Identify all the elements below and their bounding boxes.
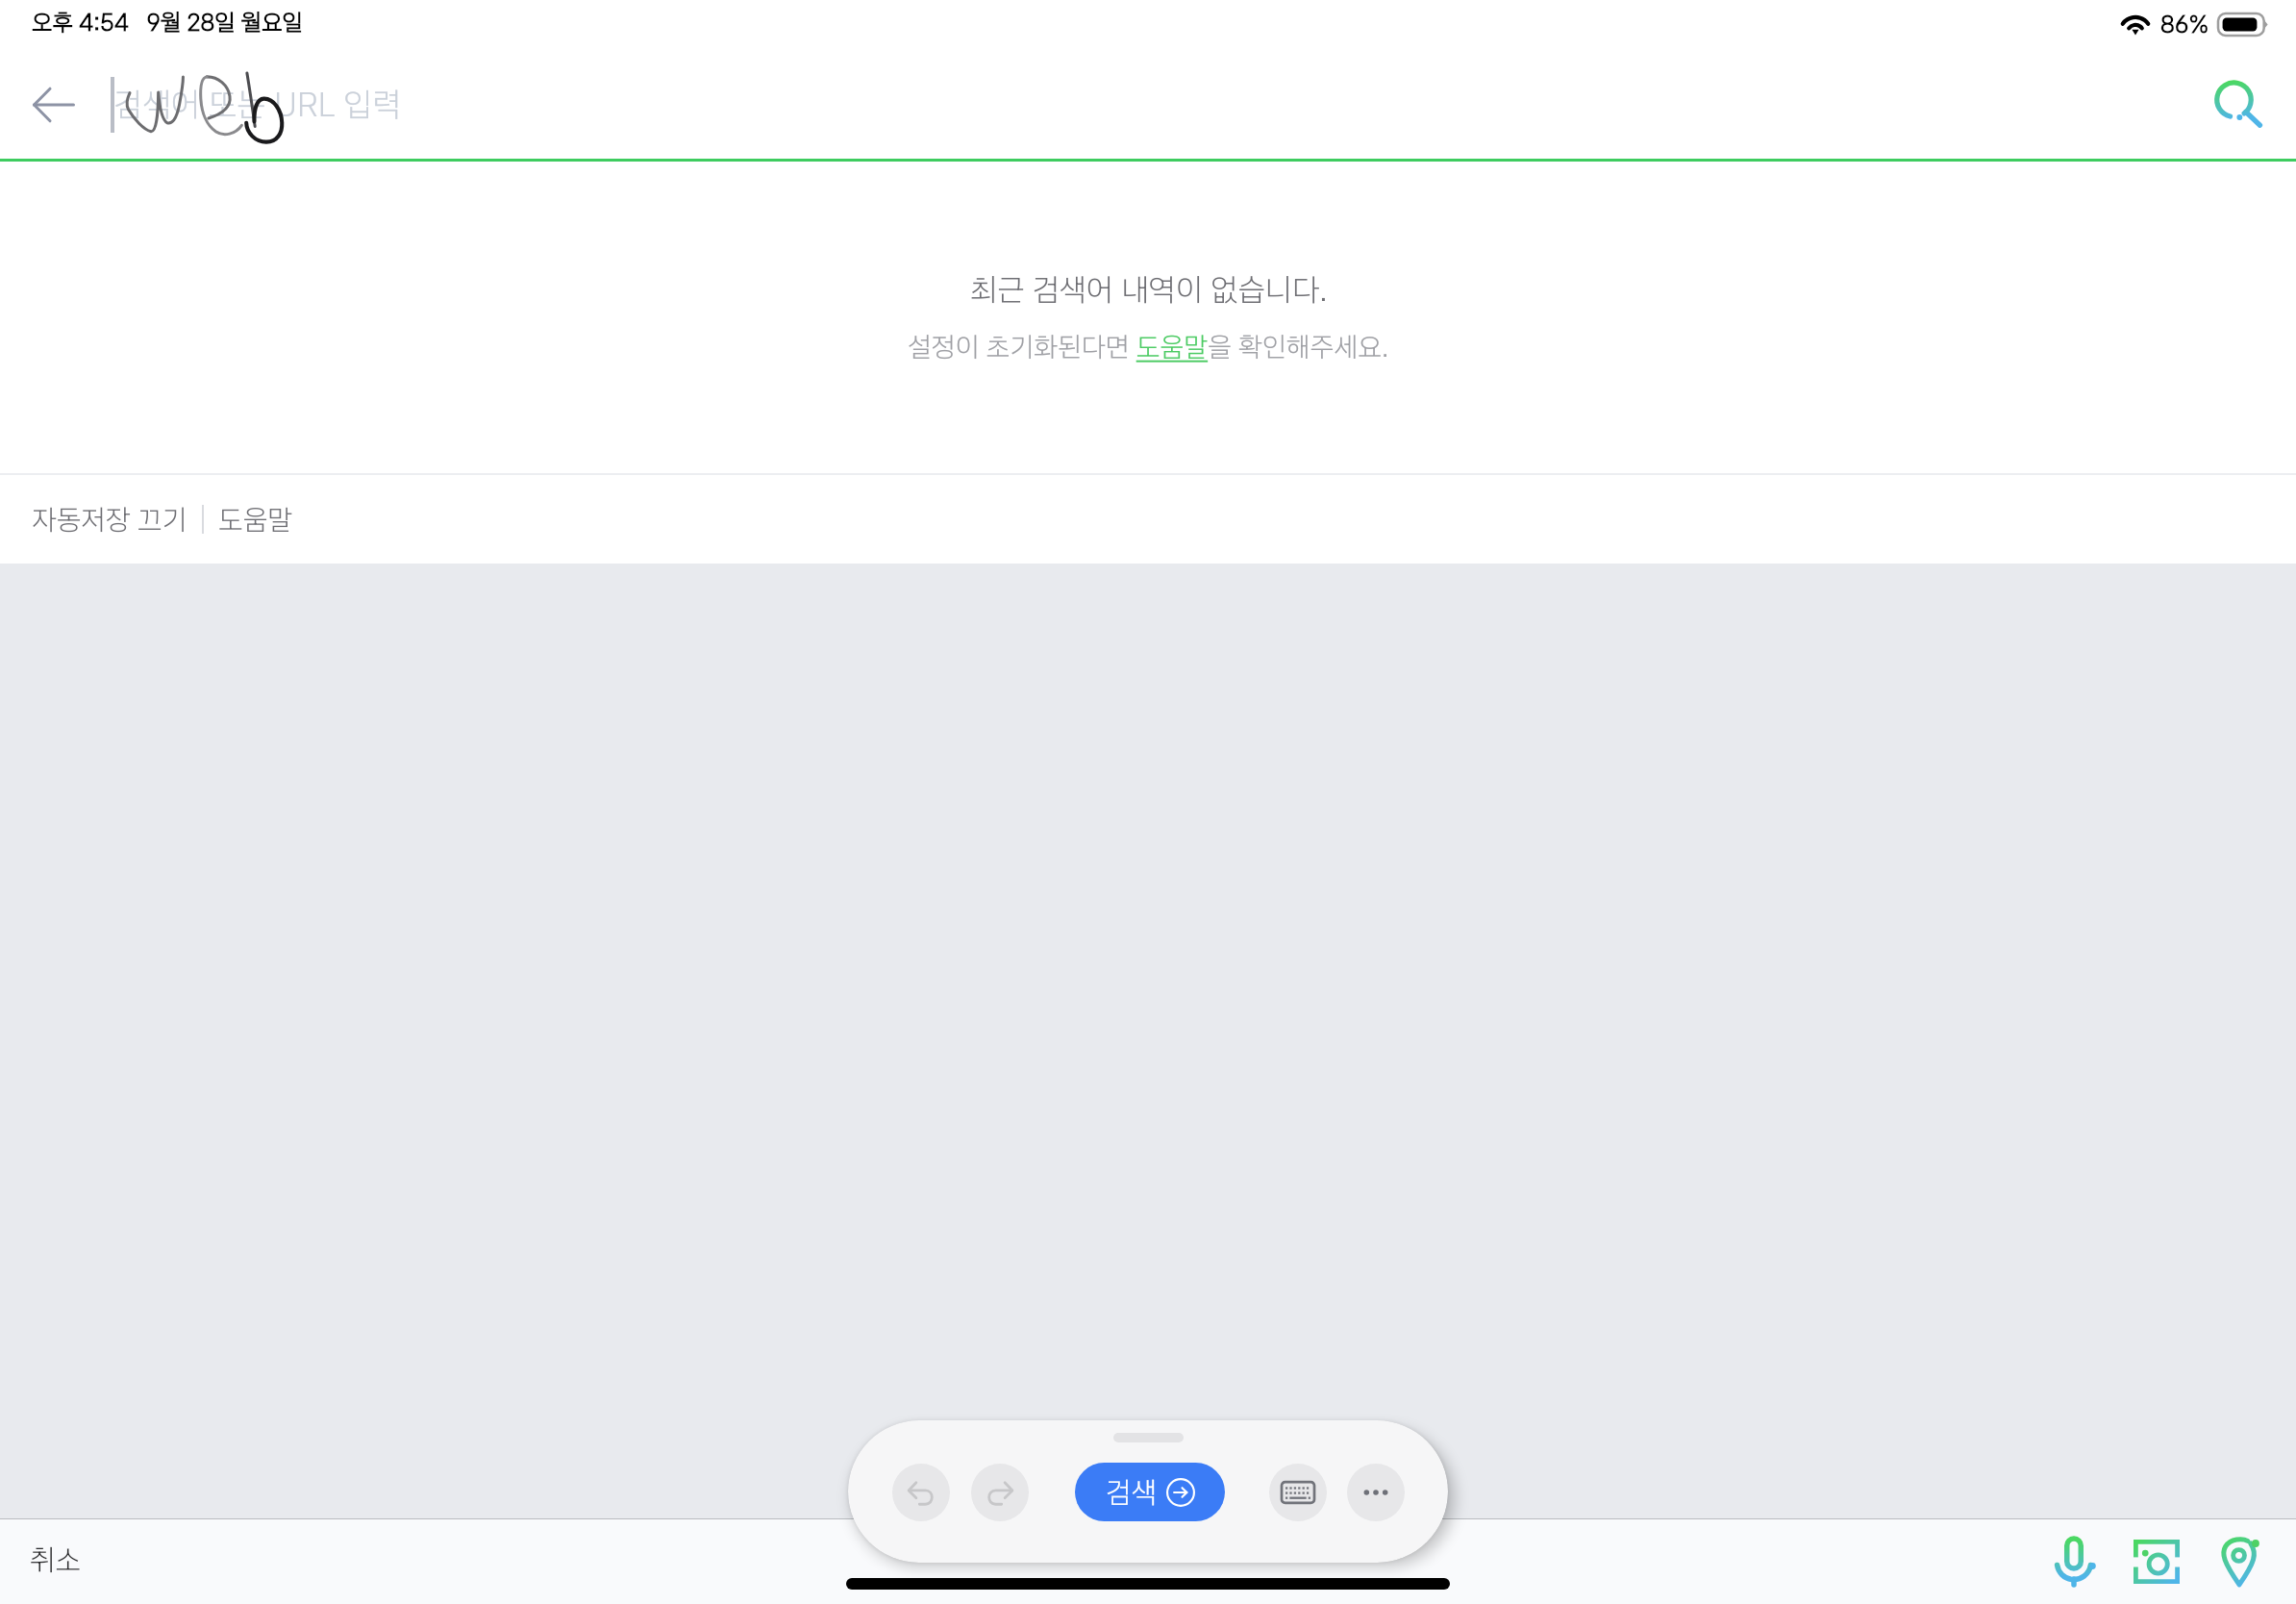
staticText: 검색어 또는 URL 입력	[113, 85, 402, 125]
button[interactable]: Keyboard	[1269, 1464, 1327, 1521]
staticText: 도움말	[218, 502, 293, 537]
button[interactable]: 취소	[13, 1533, 98, 1591]
staticText: 검색	[1106, 1474, 1158, 1510]
button[interactable]: Back	[0, 51, 108, 159]
button[interactable]: Redo	[971, 1464, 1029, 1521]
button[interactable]: More options	[1347, 1464, 1405, 1521]
button[interactable]: Lens search	[2115, 1520, 2198, 1603]
button[interactable]: 자동저장 끄기	[32, 494, 187, 544]
staticText: 설정이 초기화된다면 도움말을 확인해주세요.	[908, 330, 1389, 363]
button[interactable]: Voice search	[2033, 1520, 2115, 1603]
staticText: 86%	[2160, 10, 2209, 38]
button[interactable]: 도움말	[218, 494, 293, 544]
button[interactable]: Place search	[2198, 1520, 2281, 1603]
staticText: 최근 검색어 내역이 없습니다.	[970, 271, 1328, 309]
staticText: 취소	[30, 1541, 82, 1577]
staticText: 자동저장 끄기	[32, 502, 187, 537]
staticText: 오후 4:54 9월 28일 월요일	[32, 8, 303, 37]
button[interactable]: Undo	[892, 1464, 950, 1521]
button[interactable]: Search	[2190, 57, 2286, 153]
button[interactable]: 검색	[1075, 1463, 1225, 1521]
